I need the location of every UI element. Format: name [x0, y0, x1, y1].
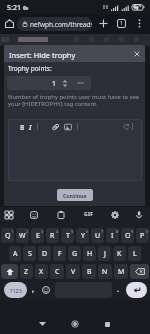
- staticText: S: [28, 249, 32, 259]
- button[interactable]: Enter: [126, 282, 147, 298]
- button[interactable]: E: [31, 228, 44, 243]
- staticText: I: [111, 231, 114, 241]
- button[interactable]: Tabs: [114, 16, 129, 31]
- button[interactable]: Stickers: [26, 207, 41, 222]
- staticText: 8: [116, 229, 119, 234]
- button[interactable]: 1: [7, 76, 91, 90]
- staticText: L: [133, 249, 137, 259]
- staticText: N: [102, 267, 108, 277]
- staticText: R: [50, 231, 55, 241]
- staticText: Continue: [63, 192, 87, 199]
- staticText: Number of trophy points user must have t…: [8, 93, 144, 108]
- button[interactable]: C: [50, 264, 64, 279]
- button[interactable]: M: [114, 264, 128, 279]
- staticText: C: [55, 267, 60, 277]
- button[interactable]: W: [16, 228, 29, 243]
- button[interactable]: Settings: [107, 207, 122, 222]
- button[interactable]: Back: [32, 314, 52, 334]
- button[interactable]: Q: [1, 228, 14, 243]
- button[interactable]: Keyboard layouts: [1, 207, 16, 222]
- button[interactable]: Home: [2, 16, 17, 31]
- button[interactable]: S: [23, 246, 36, 261]
- staticText: B: [20, 123, 25, 132]
- staticText: 3: [41, 229, 44, 234]
- button[interactable]: Home: [65, 314, 85, 334]
- staticText: D: [42, 249, 48, 259]
- staticText: H: [87, 249, 93, 259]
- button[interactable]: Emoji: [39, 282, 53, 298]
- button[interactable]: ,: [28, 282, 39, 298]
- button[interactable]: U: [91, 228, 104, 243]
- button[interactable]: V: [66, 264, 80, 279]
- staticText: 7: [101, 229, 104, 234]
- staticText: nefwph.com/threads/: [30, 20, 92, 29]
- button[interactable]: New tab: [96, 16, 111, 31]
- staticText: V: [71, 267, 76, 277]
- button[interactable]: X: [35, 264, 48, 279]
- button[interactable]: GIF: [81, 207, 96, 222]
- button[interactable]: H: [83, 246, 96, 261]
- button[interactable]: Shift: [1, 264, 18, 279]
- staticText: M: [118, 267, 125, 277]
- staticText: 1: [120, 20, 123, 27]
- staticText: Trophy points:: [8, 64, 52, 73]
- staticText: 4: [56, 229, 59, 234]
- button[interactable]: nefwph.com/threads/: [17, 17, 92, 31]
- staticText: A: [13, 249, 18, 259]
- button[interactable]: L: [128, 246, 141, 261]
- button[interactable]: G: [68, 246, 81, 261]
- staticText: Z: [24, 267, 29, 277]
- staticText: 2: [26, 229, 29, 234]
- staticText: 5: [71, 229, 74, 234]
- staticText: O: [125, 231, 131, 241]
- button[interactable]: Y: [76, 228, 89, 243]
- button[interactable]: J: [98, 246, 111, 261]
- button[interactable]: T: [61, 228, 74, 243]
- staticText: 5:21: [7, 3, 21, 13]
- button[interactable]: Close: [130, 47, 143, 60]
- staticText: 9: [131, 229, 134, 234]
- staticText: ?123: [10, 287, 22, 294]
- button[interactable]: ?123: [4, 282, 27, 298]
- staticText: Q: [5, 231, 11, 241]
- button[interactable]: P: [136, 228, 149, 243]
- button[interactable]: .: [113, 282, 124, 298]
- staticText: K: [117, 249, 122, 259]
- staticText: Insert: Hide trophy: [9, 50, 76, 60]
- staticText: X: [39, 267, 44, 277]
- staticText: E: [36, 231, 40, 241]
- button[interactable]: Voice input: [131, 207, 146, 222]
- button[interactable]: Backspace: [130, 264, 149, 279]
- staticText: J: [104, 249, 106, 259]
- button[interactable]: Z: [20, 264, 33, 279]
- button[interactable]: A: [9, 246, 21, 261]
- button[interactable]: F: [53, 246, 66, 261]
- staticText: G: [72, 249, 78, 259]
- staticText: F: [58, 249, 62, 259]
- staticText: U: [95, 231, 101, 241]
- staticText: GIF: [84, 211, 94, 218]
- staticText: ,: [32, 283, 35, 294]
- button[interactable]: More options: [132, 16, 147, 31]
- staticText: 1: [52, 79, 57, 89]
- staticText: 6: [86, 229, 89, 234]
- staticText: B: [87, 267, 92, 277]
- button[interactable]: O: [121, 228, 134, 243]
- button[interactable]: Clipboard: [53, 207, 68, 222]
- button[interactable]: R: [46, 228, 59, 243]
- staticText: W: [19, 231, 26, 241]
- staticText: 1: [11, 229, 14, 234]
- staticText: 0: [146, 229, 149, 234]
- button[interactable]: Continue: [57, 189, 93, 201]
- staticText: T: [66, 231, 70, 241]
- button[interactable]: D: [38, 246, 51, 261]
- button[interactable]: Recents: [97, 314, 117, 334]
- staticText: .: [117, 283, 120, 294]
- button[interactable]: B: [82, 264, 96, 279]
- button[interactable]: N: [98, 264, 112, 279]
- button[interactable]: K: [113, 246, 126, 261]
- staticText: P: [140, 231, 145, 241]
- button[interactable]: I: [106, 228, 119, 243]
- staticText: Y: [81, 231, 85, 241]
